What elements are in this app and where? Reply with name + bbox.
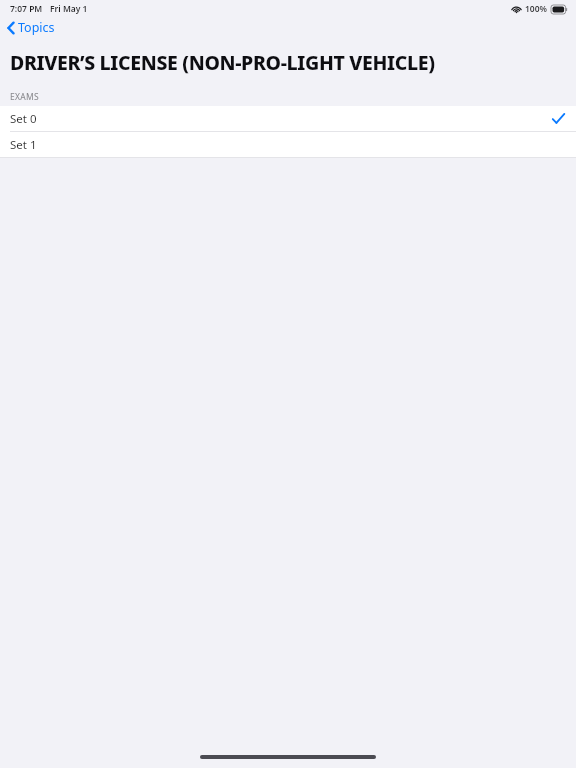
staticText: 7:07 PM	[10, 3, 43, 15]
staticText: EXAMS	[10, 91, 40, 103]
staticText: Set 0	[10, 111, 37, 127]
button[interactable]: Topics	[0, 17, 65, 38]
button[interactable]: Set 0	[0, 106, 576, 131]
other: Selected	[552, 113, 565, 124]
staticText: Topics	[18, 19, 55, 36]
staticText: Fri May 1	[50, 3, 88, 15]
staticText: 100%	[525, 3, 548, 15]
staticText: DRIVER’S LICENSE (NON-PRO-LIGHT VEHICLE)	[10, 49, 435, 76]
staticText: Set 1	[10, 137, 37, 153]
button[interactable]: Set 1	[0, 132, 576, 157]
